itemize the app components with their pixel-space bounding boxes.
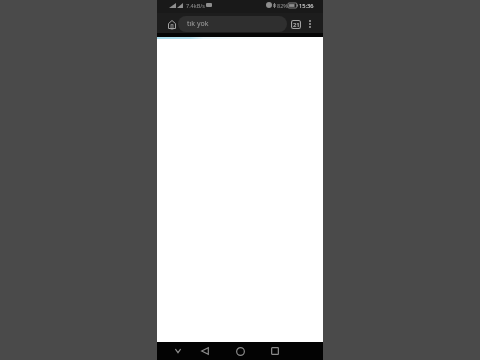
staticText: 21 — [293, 21, 300, 29]
button[interactable]: More options — [303, 17, 317, 31]
staticText: 82% — [277, 2, 288, 9]
button[interactable]: tık yok — [178, 16, 287, 32]
button[interactable]: Home page — [164, 16, 180, 32]
staticText: 7.4kB/s — [186, 2, 205, 9]
button[interactable]: Recent apps — [264, 342, 286, 360]
staticText: 15:36 — [299, 2, 314, 9]
staticText: tık yok — [187, 19, 209, 29]
button[interactable]: Back — [194, 342, 216, 360]
button[interactable]: Hide keyboard — [167, 342, 189, 360]
button[interactable]: Switch tabs — [288, 16, 304, 32]
button[interactable]: Home — [229, 342, 251, 360]
